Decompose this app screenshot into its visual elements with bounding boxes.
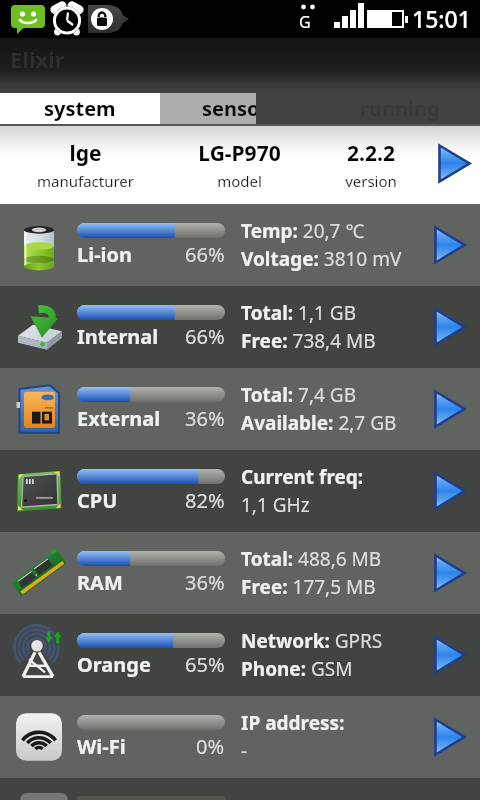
button[interactable]: Open Orange details: [422, 614, 480, 696]
button[interactable]: RAM: [0, 532, 480, 614]
staticText: External: [77, 405, 161, 432]
button[interactable]: LG-P970: [170, 126, 308, 204]
staticText: Free: 177,5 MB: [241, 574, 376, 600]
staticText: LG-P970: [198, 139, 281, 168]
staticText: system: [44, 95, 116, 122]
staticText: IP address:: [241, 710, 345, 736]
staticText: Available: 2,7 GB: [241, 410, 397, 436]
button[interactable]: Open CPU details: [422, 450, 480, 532]
button[interactable]: running: [320, 93, 480, 126]
staticText: manufacturer: [37, 171, 134, 191]
button[interactable]: system: [0, 93, 160, 126]
staticText: 0%: [196, 733, 225, 760]
button[interactable]: Internal: [0, 286, 480, 368]
button[interactable]: Open External details: [422, 368, 480, 450]
staticText: CPU: [77, 487, 118, 514]
staticText: sensors: [202, 95, 279, 122]
staticText: Total: 488,6 MB: [241, 546, 382, 572]
staticText: Current freq:: [241, 464, 364, 490]
staticText: 36%: [185, 569, 225, 596]
button[interactable]: Orange: [0, 614, 480, 696]
staticText: 36%: [185, 405, 225, 432]
staticText: 66%: [185, 323, 225, 350]
button[interactable]: Open Wi-Fi details: [422, 696, 480, 778]
staticText: 66%: [185, 241, 225, 268]
button[interactable]: Open Internal details: [422, 286, 480, 368]
staticText: Internal: [77, 323, 159, 350]
staticText: lge: [69, 139, 102, 168]
button[interactable]: Open Li-ion details: [422, 204, 480, 286]
staticText: 65%: [185, 651, 225, 678]
staticText: Voltage: 3810 mV: [241, 246, 402, 272]
staticText: 15:01: [412, 3, 471, 34]
staticText: Orange: [77, 651, 151, 678]
staticText: G: [299, 11, 311, 33]
button[interactable]: CPU: [0, 450, 480, 532]
staticText: Temp: 20,7 ℃: [241, 218, 365, 244]
staticText: Phone: GSM: [241, 656, 353, 682]
staticText: -: [241, 738, 248, 764]
staticText: Total: 1,1 GB: [241, 300, 357, 326]
button[interactable]: Li-ion: [0, 204, 480, 286]
button[interactable]: lge: [0, 126, 170, 204]
button[interactable]: External: [0, 368, 480, 450]
staticText: Free: 738,4 MB: [241, 328, 376, 354]
button[interactable]: Open RAM details: [422, 532, 480, 614]
button[interactable]: 2.2.2: [308, 126, 434, 204]
staticText: Network: GPRS: [241, 628, 383, 654]
button[interactable]: Wi-Fi: [0, 696, 480, 778]
button[interactable]: sensors: [160, 93, 320, 126]
staticText: Elixir: [10, 44, 65, 74]
staticText: Total: 7,4 GB: [241, 382, 357, 408]
staticText: 2.2.2: [347, 139, 395, 168]
staticText: version: [345, 171, 397, 191]
staticText: Wi-Fi: [77, 733, 126, 760]
button[interactable]: Show device details: [434, 126, 480, 204]
staticText: model: [217, 171, 262, 191]
staticText: RAM: [77, 569, 123, 596]
staticText: Li-ion: [77, 241, 133, 268]
staticText: 82%: [185, 487, 225, 514]
staticText: 1,1 GHz: [241, 492, 310, 518]
